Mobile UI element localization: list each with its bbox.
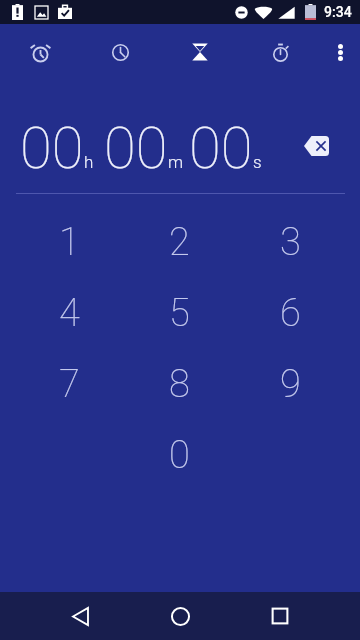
button[interactable]: Timer — [160, 24, 240, 80]
staticText: 2 — [169, 220, 190, 265]
button[interactable]: Alarm — [0, 24, 80, 80]
button[interactable]: Back — [56, 592, 104, 640]
button[interactable]: Delete — [296, 126, 336, 166]
button[interactable]: More options — [320, 24, 360, 80]
button[interactable]: Stopwatch — [240, 24, 320, 80]
staticText: 00 — [20, 114, 84, 182]
staticText: 00 — [104, 114, 168, 182]
button[interactable]: 3 — [235, 207, 346, 278]
button[interactable]: 7 — [14, 349, 124, 420]
button[interactable]: 0 — [124, 420, 235, 491]
staticText: 9:34 — [324, 4, 352, 20]
staticText: 8 — [169, 362, 190, 407]
staticText: 00 — [189, 114, 253, 182]
button[interactable]: 1 — [14, 207, 124, 278]
button[interactable]: Recents — [256, 592, 304, 640]
button[interactable]: 4 — [14, 278, 124, 349]
button[interactable]: 8 — [124, 349, 235, 420]
button[interactable]: 5 — [124, 278, 235, 349]
staticText: 3 — [280, 220, 301, 265]
staticText: 5 — [169, 291, 190, 336]
staticText: 9 — [280, 362, 301, 407]
staticText: 0 — [169, 433, 190, 478]
staticText: s — [253, 152, 262, 172]
staticText: 4 — [59, 291, 80, 336]
button[interactable]: 6 — [235, 278, 346, 349]
staticText: 6 — [280, 291, 301, 336]
button[interactable]: 2 — [124, 207, 235, 278]
button[interactable]: Clock — [80, 24, 160, 80]
button[interactable]: 9 — [235, 349, 346, 420]
staticText: 1 — [59, 220, 80, 265]
staticText: m — [168, 152, 184, 172]
staticText: h — [84, 152, 94, 172]
staticText: 7 — [59, 362, 80, 407]
button[interactable]: Home — [156, 592, 204, 640]
